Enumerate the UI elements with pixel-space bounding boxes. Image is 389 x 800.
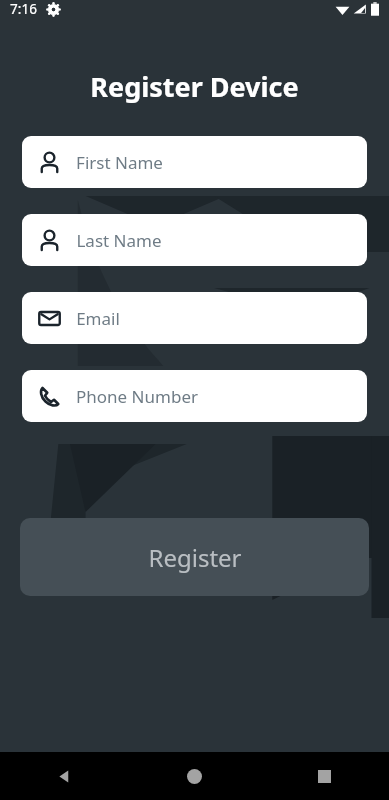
staticText: Phone Number — [76, 385, 198, 408]
staticText: 7:16 — [10, 0, 37, 18]
button[interactable]: Recent apps — [259, 752, 389, 800]
button[interactable]: Phone Number — [22, 370, 367, 422]
staticText: Email — [76, 307, 120, 330]
staticText: Register Device — [90, 68, 299, 105]
staticText: First Name — [76, 151, 163, 174]
staticText: Register — [148, 541, 242, 574]
staticText: Last Name — [76, 229, 162, 252]
button[interactable]: Register — [20, 518, 369, 596]
button[interactable]: Back — [0, 752, 129, 800]
button[interactable]: Email — [22, 292, 367, 344]
button[interactable]: Last Name — [22, 214, 367, 266]
button[interactable]: Home — [129, 752, 259, 800]
button[interactable]: First Name — [22, 136, 367, 188]
